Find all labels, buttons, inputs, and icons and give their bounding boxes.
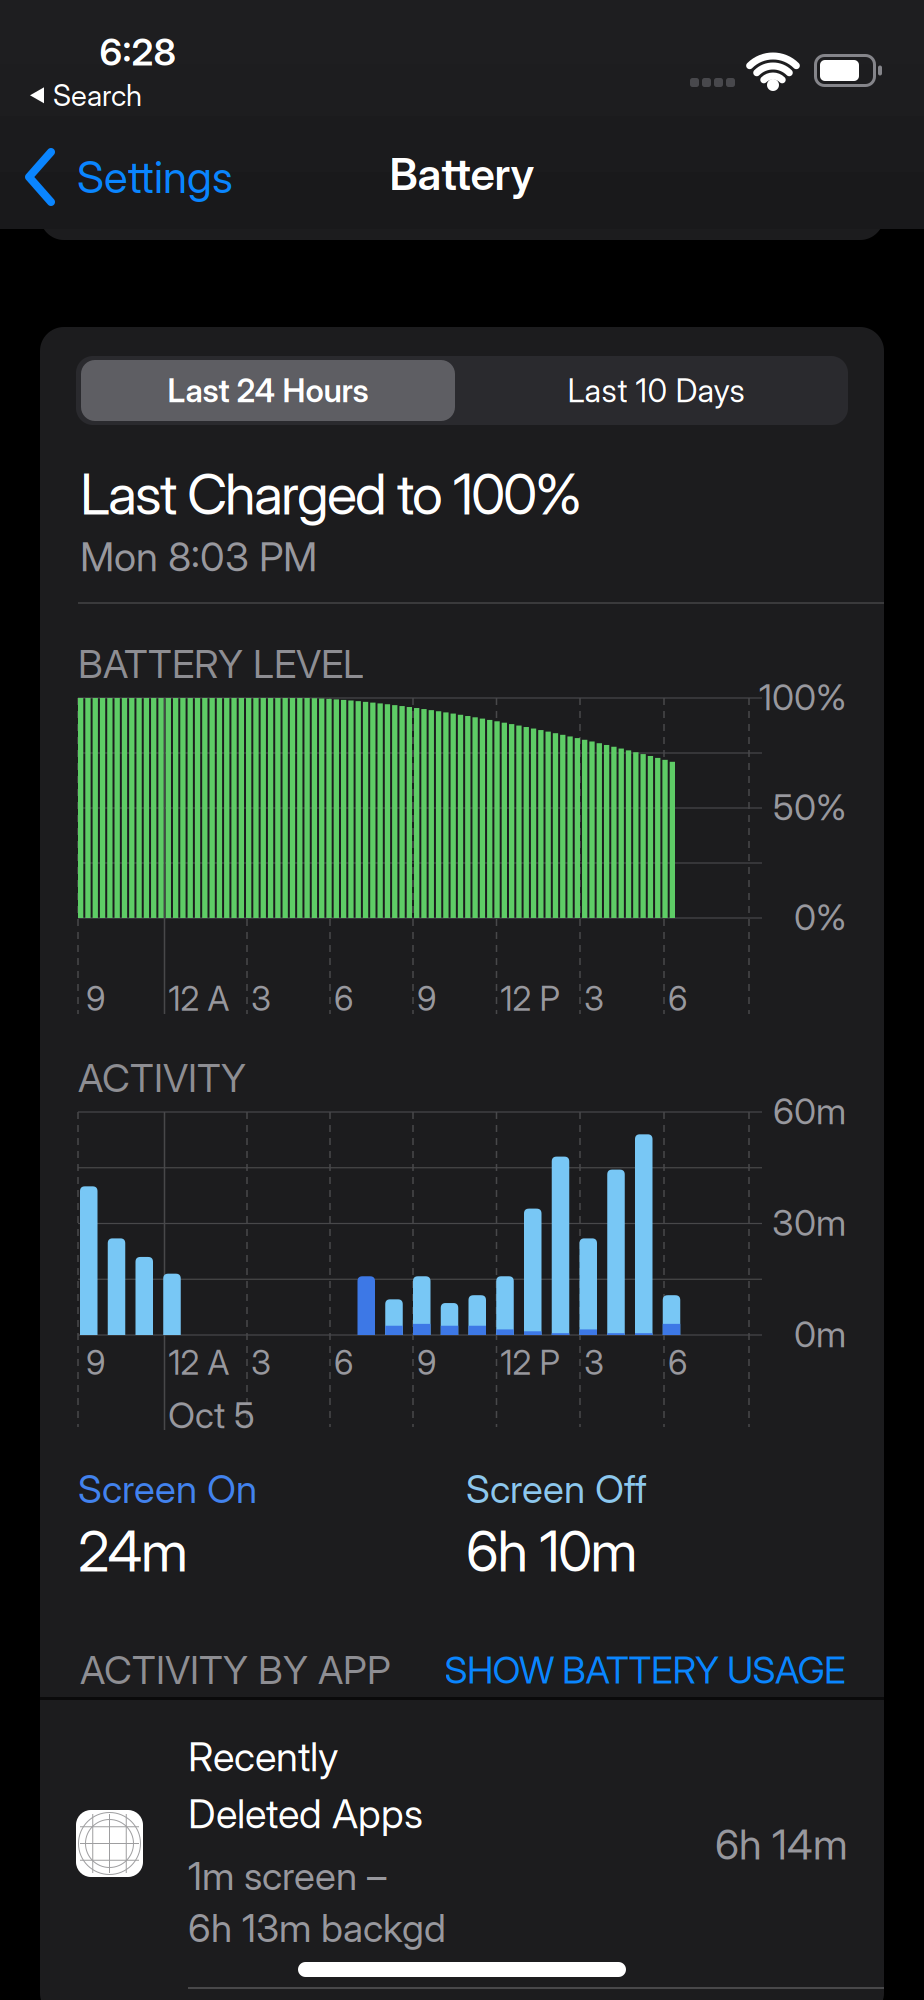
staticText: 60m xyxy=(773,1090,846,1132)
staticText: 12 P xyxy=(500,1343,559,1382)
staticText: 0m xyxy=(794,1313,846,1355)
staticText: Deleted Apps xyxy=(188,1790,423,1837)
staticText: 3 xyxy=(584,979,604,1018)
staticText: 6 xyxy=(334,979,353,1018)
staticText: 12 A xyxy=(168,979,229,1018)
staticText: Battery xyxy=(389,148,534,200)
staticText: Oct 5 xyxy=(168,1394,255,1436)
staticText: 6h 13m backgd xyxy=(188,1905,446,1951)
staticText: 12 P xyxy=(500,979,559,1018)
staticText: 9 xyxy=(417,979,436,1018)
staticText: 9 xyxy=(86,1343,105,1382)
staticText: 30m xyxy=(772,1201,846,1244)
staticText: 1m screen – xyxy=(188,1853,386,1899)
staticText: 100% xyxy=(759,676,846,718)
staticText: 24m xyxy=(78,1518,188,1584)
button[interactable]: Back to Settings xyxy=(25,149,233,205)
staticText: 6 xyxy=(668,1343,687,1382)
staticText: BATTERY LEVEL xyxy=(78,641,364,687)
button[interactable]: SHOW BATTERY USAGE xyxy=(326,1648,846,1692)
staticText: Mon 8:03 PM xyxy=(80,533,317,580)
button[interactable]: Recently xyxy=(40,1700,924,2000)
staticText: 6:28 xyxy=(99,30,176,74)
staticText: Settings xyxy=(77,151,233,203)
staticText: Last Charged to 100% xyxy=(80,461,582,527)
staticText: 6h 14m xyxy=(715,1820,848,1869)
staticText: 9 xyxy=(86,979,105,1018)
staticText: Last 10 Days xyxy=(567,372,744,409)
staticText: Last 24 Hours xyxy=(167,372,368,409)
button[interactable]: Last 24 Hours xyxy=(81,360,455,421)
staticText: 3 xyxy=(584,1343,604,1382)
staticText: 6h 10m xyxy=(466,1518,637,1584)
staticText: Search xyxy=(53,78,142,113)
staticText: 6 xyxy=(668,979,687,1018)
staticText: Recently xyxy=(188,1733,338,1780)
button[interactable]: Last 10 Days xyxy=(469,360,843,421)
staticText: 9 xyxy=(417,1343,436,1382)
staticText: ACTIVITY xyxy=(78,1055,246,1101)
staticText: Screen On xyxy=(78,1466,257,1512)
staticText: 50% xyxy=(773,786,846,828)
staticText: 3 xyxy=(251,979,271,1018)
staticText: 0% xyxy=(794,896,846,938)
staticText: Screen Off xyxy=(466,1466,647,1512)
staticText: 12 A xyxy=(168,1343,229,1382)
staticText: 3 xyxy=(251,1343,271,1382)
staticText: SHOW BATTERY USAGE xyxy=(444,1648,846,1692)
button[interactable]: Back to Search xyxy=(30,78,142,113)
staticText: 6 xyxy=(334,1343,353,1382)
staticText: ACTIVITY BY APP xyxy=(80,1647,391,1693)
